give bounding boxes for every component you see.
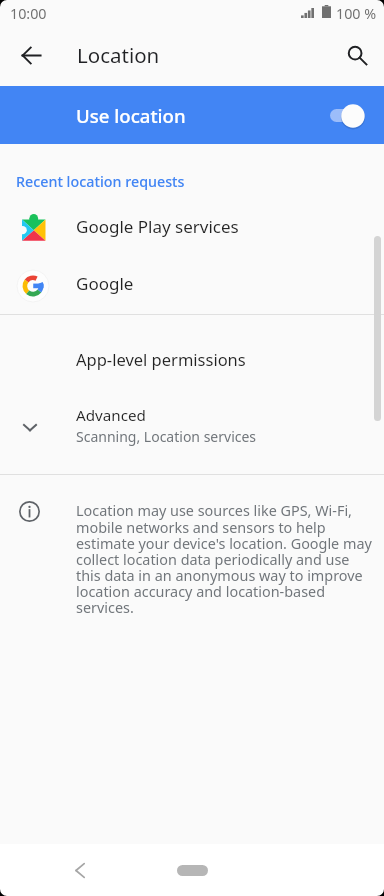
button[interactable]: Back xyxy=(62,852,98,888)
staticText: Advanced xyxy=(76,405,146,426)
staticText: Scanning, Location services xyxy=(76,427,257,446)
button[interactable]: Use location xyxy=(0,86,384,144)
staticText: Location may use sources like GPS, Wi-Fi… xyxy=(76,501,374,617)
button[interactable]: App-level permissions xyxy=(0,330,384,388)
button[interactable]: Search xyxy=(337,35,377,75)
staticText: 100 % xyxy=(336,4,377,23)
staticText: Location xyxy=(77,41,160,69)
staticText: 10:00 xyxy=(10,4,47,23)
staticText: Use location xyxy=(76,103,186,128)
staticText: Recent location requests xyxy=(16,172,185,191)
button[interactable]: Google Play services xyxy=(0,198,384,255)
button[interactable]: Home xyxy=(177,865,208,876)
button[interactable]: Back xyxy=(11,35,51,75)
staticText: Google Play services xyxy=(76,215,239,238)
staticText: Google xyxy=(76,272,134,295)
button[interactable]: Advanced xyxy=(0,392,384,458)
button[interactable]: Google xyxy=(0,255,384,312)
staticText: App-level permissions xyxy=(76,348,246,370)
